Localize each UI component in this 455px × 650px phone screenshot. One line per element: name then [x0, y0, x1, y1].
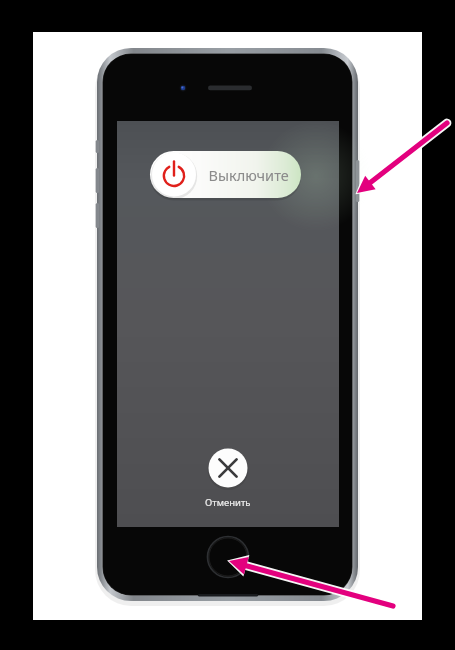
- button[interactable]: Cancel: [206, 446, 250, 490]
- button[interactable]: Slide to power off: [150, 151, 301, 198]
